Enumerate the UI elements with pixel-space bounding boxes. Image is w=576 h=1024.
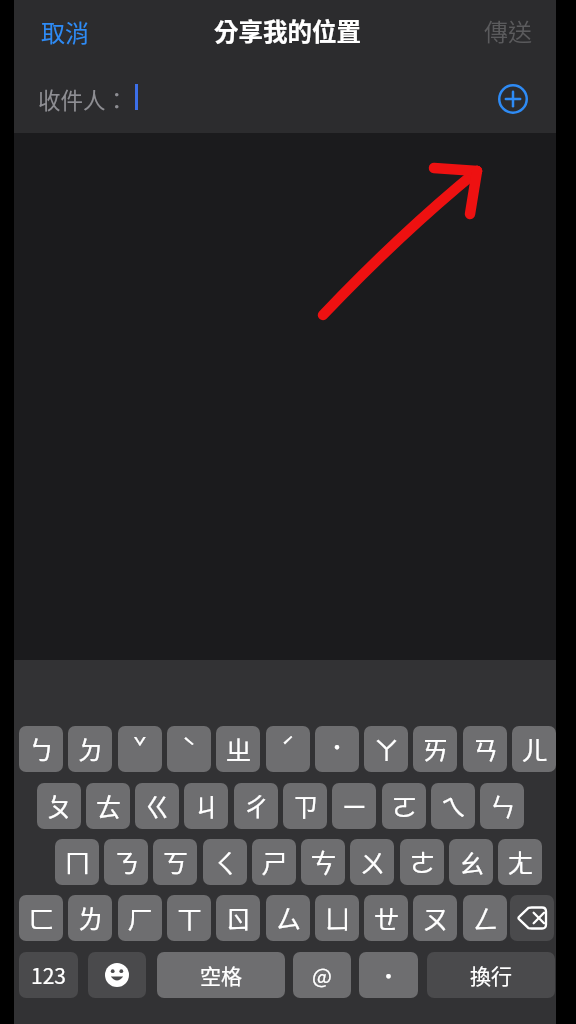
staticText: · (378, 960, 399, 990)
button[interactable]: ㄛ (382, 783, 426, 829)
button[interactable]: 傳送 (462, 6, 554, 54)
button[interactable]: @ (293, 952, 351, 998)
button[interactable]: ㄘ (301, 839, 345, 885)
staticText: ㄕ (261, 843, 288, 881)
button[interactable]: ˋ (167, 726, 211, 772)
staticText: 傳送 (484, 13, 532, 48)
staticText: 分享我的位置 (214, 13, 361, 48)
staticText: ㄜ (409, 843, 436, 881)
staticText: ㄅ (28, 730, 55, 768)
button[interactable]: 取消 (22, 7, 108, 55)
button[interactable]: ㄚ (364, 726, 408, 772)
button[interactable]: ㄨ (350, 839, 394, 885)
button[interactable]: 123 (19, 952, 78, 998)
staticText: ㄇ (64, 843, 91, 881)
staticText: ˙ (331, 729, 343, 762)
staticText: ㄣ (489, 787, 516, 825)
button[interactable]: ㄩ (315, 895, 359, 941)
staticText: ㄞ (422, 730, 449, 768)
staticText: ㄡ (422, 899, 449, 937)
staticText: ˋ (182, 729, 196, 762)
staticText: ㄦ (521, 730, 548, 768)
button[interactable]: ㄍ (135, 783, 179, 829)
staticText: ㄍ (144, 787, 171, 825)
button[interactable]: ㄌ (68, 895, 112, 941)
staticText: ㄚ (373, 730, 400, 768)
button[interactable]: ㄥ (463, 895, 507, 941)
button[interactable]: ㄐ (184, 783, 228, 829)
staticText: ˇ (133, 729, 147, 762)
button[interactable]: 換行 (427, 952, 555, 998)
button[interactable]: ㄝ (364, 895, 408, 941)
button[interactable]: ㄋ (104, 839, 148, 885)
button[interactable]: ㄊ (86, 783, 130, 829)
button[interactable]: ㄖ (216, 895, 260, 941)
staticText: ㄙ (275, 899, 302, 937)
staticText: ㄆ (46, 787, 73, 825)
staticText: ㄧ (341, 787, 368, 825)
staticText: ㄐ (193, 787, 220, 825)
staticText: 收件人： (38, 83, 129, 116)
staticText: ㄎ (162, 843, 189, 881)
staticText: ㄒ (176, 899, 203, 937)
button[interactable]: ㄙ (266, 895, 310, 941)
staticText: ㄘ (310, 843, 337, 881)
button[interactable]: ㄒ (167, 895, 211, 941)
button[interactable]: ㄗ (283, 783, 327, 829)
staticText: ㄛ (391, 787, 418, 825)
staticText: ㄈ (28, 899, 55, 937)
button[interactable]: ㄢ (463, 726, 507, 772)
staticText: ㄖ (225, 899, 252, 937)
staticText: @ (312, 960, 332, 990)
staticText: ㄨ (359, 843, 386, 881)
staticText: ㄤ (507, 843, 534, 881)
staticText: ˊ (281, 729, 295, 762)
button[interactable]: ㄑ (203, 839, 247, 885)
button[interactable]: ㄕ (252, 839, 296, 885)
button[interactable]: ㄜ (400, 839, 444, 885)
button[interactable]: ㄔ (234, 783, 278, 829)
staticText: ㄩ (324, 899, 351, 937)
button[interactable]: ˇ (118, 726, 162, 772)
button[interactable]: ㄉ (68, 726, 112, 772)
button[interactable]: ㄈ (19, 895, 63, 941)
button[interactable]: Backspace (510, 895, 554, 941)
button[interactable]: ㄣ (480, 783, 524, 829)
button[interactable]: ㄦ (512, 726, 556, 772)
button[interactable]: ㄟ (431, 783, 475, 829)
staticText: ㄝ (373, 899, 400, 937)
button[interactable]: ㄡ (413, 895, 457, 941)
staticText: ㄋ (113, 843, 140, 881)
button[interactable]: ㄧ (332, 783, 376, 829)
staticText: ㄥ (472, 899, 499, 937)
button[interactable]: ㄎ (153, 839, 197, 885)
staticText: ㄏ (127, 899, 154, 937)
staticText: ㄗ (292, 787, 319, 825)
staticText: 取消 (41, 14, 89, 49)
button[interactable]: 空格 (157, 952, 285, 998)
staticText: 123 (31, 960, 66, 990)
staticText: ㄢ (472, 730, 499, 768)
button[interactable]: ㄤ (498, 839, 542, 885)
button[interactable]: ㄓ (216, 726, 260, 772)
button[interactable]: Add recipient (498, 84, 528, 114)
staticText: ㄊ (95, 787, 122, 825)
staticText: ㄉ (77, 730, 104, 768)
button[interactable]: · (359, 952, 418, 998)
button[interactable]: ㄆ (37, 783, 81, 829)
button[interactable]: ㄞ (413, 726, 457, 772)
staticText: ㄟ (440, 787, 467, 825)
staticText: ㄔ (243, 787, 270, 825)
button[interactable]: ㄇ (55, 839, 99, 885)
staticText: ㄠ (458, 843, 485, 881)
button[interactable]: ㄠ (449, 839, 493, 885)
staticText: ㄓ (225, 730, 252, 768)
staticText: 換行 (470, 960, 512, 990)
button[interactable]: Emoji (88, 952, 146, 998)
button[interactable]: ㄅ (19, 726, 63, 772)
staticText: ㄑ (212, 843, 239, 881)
button[interactable]: ㄏ (118, 895, 162, 941)
button[interactable]: ˙ (315, 726, 359, 772)
staticText: ㄌ (77, 899, 104, 937)
button[interactable]: ˊ (266, 726, 310, 772)
